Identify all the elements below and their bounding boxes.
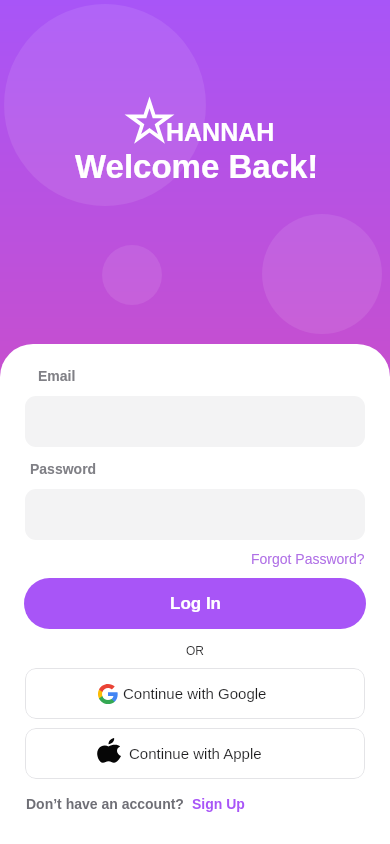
staticText: HANNAH (166, 118, 275, 146)
staticText: Log In (170, 594, 221, 613)
staticText: Forgot Password? (251, 551, 365, 567)
button[interactable]: Forgot Password? (251, 551, 365, 567)
staticText: Don’t have an account? (26, 796, 184, 812)
staticText: OR (186, 644, 204, 657)
button[interactable]: Log In (24, 578, 366, 629)
button[interactable]: Continue with Google (25, 668, 365, 719)
staticText: Welcome Back! (75, 148, 319, 185)
staticText: Sign Up (192, 796, 245, 812)
button[interactable]: Continue with Apple (25, 728, 365, 779)
staticText: Password (30, 461, 97, 477)
staticText: Continue with Apple (129, 745, 262, 762)
staticText: Email (38, 368, 76, 384)
button[interactable]: Sign Up (192, 796, 245, 812)
staticText: Continue with Google (123, 685, 267, 702)
